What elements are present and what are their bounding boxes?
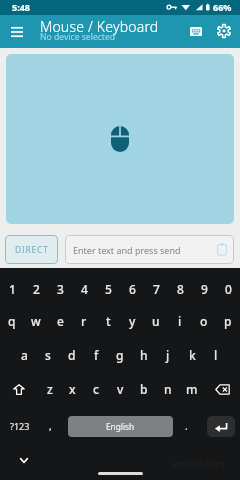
staticText: i: [178, 313, 182, 329]
button[interactable]: Shift: [0, 378, 38, 400]
staticText: d: [68, 347, 76, 363]
staticText: v: [117, 381, 124, 397]
button[interactable]: q: [0, 310, 24, 332]
button[interactable]: b: [132, 378, 156, 400]
button[interactable]: 6: [120, 278, 144, 300]
button[interactable]: ,: [40, 414, 60, 438]
button[interactable]: 9: [192, 278, 216, 300]
button[interactable]: Backspace: [204, 378, 240, 400]
staticText: f: [94, 347, 99, 363]
button[interactable]: Touchpad: [6, 54, 234, 224]
button[interactable]: 8: [168, 278, 192, 300]
button[interactable]: 2: [24, 278, 48, 300]
button[interactable]: k: [180, 344, 204, 366]
staticText: q: [8, 313, 16, 329]
staticText: b: [140, 381, 148, 397]
button[interactable]: y: [120, 310, 144, 332]
button[interactable]: Show keyboard: [181, 16, 211, 46]
staticText: wsxdn.com: [172, 457, 225, 471]
button[interactable]: a: [12, 344, 36, 366]
staticText: s: [45, 347, 51, 363]
button[interactable]: n: [156, 378, 180, 400]
staticText: p: [224, 313, 232, 329]
staticText: 7: [153, 281, 160, 297]
staticText: w: [31, 313, 41, 329]
button[interactable]: Open navigation menu: [1, 16, 32, 47]
button[interactable]: z: [38, 378, 61, 400]
button[interactable]: Enter text and press send: [65, 235, 234, 264]
staticText: h: [140, 347, 148, 363]
button[interactable]: Settings: [209, 16, 239, 46]
staticText: 9: [201, 281, 208, 297]
staticText: 0: [225, 281, 232, 297]
staticText: 3: [57, 281, 64, 297]
staticText: m: [186, 381, 198, 397]
staticText: j: [166, 347, 170, 363]
button[interactable]: j: [156, 344, 180, 366]
staticText: Mouse / Keyboard: [40, 17, 159, 36]
staticText: t: [106, 313, 111, 329]
button[interactable]: l: [204, 344, 228, 366]
button[interactable]: Enter: [207, 416, 235, 437]
button[interactable]: r: [72, 310, 96, 332]
button[interactable]: .: [176, 414, 196, 438]
button[interactable]: p: [216, 310, 240, 332]
button[interactable]: 0: [216, 278, 240, 300]
button[interactable]: 7: [144, 278, 168, 300]
button[interactable]: DIRECT: [5, 235, 58, 264]
staticText: z: [47, 381, 53, 397]
staticText: English: [106, 421, 135, 432]
staticText: 5: [105, 281, 112, 297]
button[interactable]: m: [180, 378, 204, 400]
staticText: k: [189, 347, 196, 363]
button[interactable]: 4: [72, 278, 96, 300]
staticText: 6: [129, 281, 136, 297]
staticText: y: [129, 313, 136, 329]
staticText: x: [69, 381, 76, 397]
staticText: ?123: [10, 420, 30, 432]
staticText: 5:48: [12, 1, 30, 13]
staticText: a: [21, 347, 28, 363]
button[interactable]: d: [60, 344, 84, 366]
button[interactable]: e: [48, 310, 72, 332]
staticText: l: [214, 347, 218, 363]
staticText: r: [81, 313, 87, 329]
button[interactable]: s: [36, 344, 60, 366]
button[interactable]: x: [61, 378, 84, 400]
button[interactable]: Hide keyboard: [12, 448, 36, 472]
staticText: 66%: [213, 1, 232, 13]
staticText: g: [116, 347, 124, 363]
staticText: n: [164, 381, 172, 397]
button[interactable]: h: [132, 344, 156, 366]
button[interactable]: f: [84, 344, 108, 366]
button[interactable]: o: [192, 310, 216, 332]
staticText: DIRECT: [15, 244, 49, 256]
staticText: .: [185, 419, 188, 433]
button[interactable]: English: [68, 416, 173, 437]
button[interactable]: w: [24, 310, 48, 332]
staticText: 8: [177, 281, 184, 297]
staticText: ,: [49, 419, 52, 433]
button[interactable]: 5: [96, 278, 120, 300]
button[interactable]: u: [144, 310, 168, 332]
staticText: o: [200, 313, 208, 329]
staticText: 4: [81, 281, 88, 297]
staticText: u: [152, 313, 160, 329]
staticText: 2: [33, 281, 40, 297]
button[interactable]: i: [168, 310, 192, 332]
button[interactable]: ?123: [0, 414, 40, 438]
staticText: Enter text and press send: [73, 244, 181, 256]
staticText: c: [93, 381, 99, 397]
button[interactable]: v: [108, 378, 132, 400]
button[interactable]: g: [108, 344, 132, 366]
button[interactable]: c: [84, 378, 108, 400]
staticText: No device selected: [40, 31, 116, 43]
button[interactable]: 1: [0, 278, 24, 300]
button[interactable]: 3: [48, 278, 72, 300]
staticText: 1: [9, 281, 16, 297]
staticText: e: [57, 313, 64, 329]
button[interactable]: t: [96, 310, 120, 332]
